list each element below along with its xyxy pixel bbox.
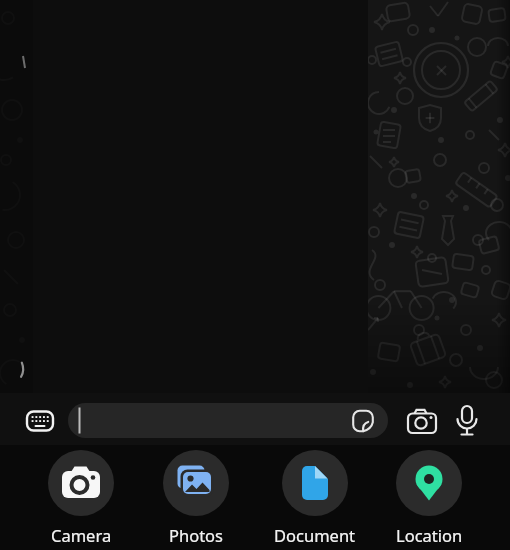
staticText: Camera — [51, 524, 112, 546]
button[interactable]: Document — [265, 450, 365, 546]
staticText: Document — [274, 524, 356, 546]
button[interactable] — [68, 403, 388, 438]
button[interactable] — [450, 403, 484, 439]
button[interactable] — [404, 405, 440, 437]
button[interactable] — [24, 407, 56, 435]
staticText: Photos — [169, 524, 224, 546]
button[interactable]: Location — [379, 450, 479, 546]
staticText: Location — [396, 524, 463, 546]
button[interactable]: Camera — [31, 450, 131, 546]
button[interactable]: Photos — [146, 450, 246, 546]
